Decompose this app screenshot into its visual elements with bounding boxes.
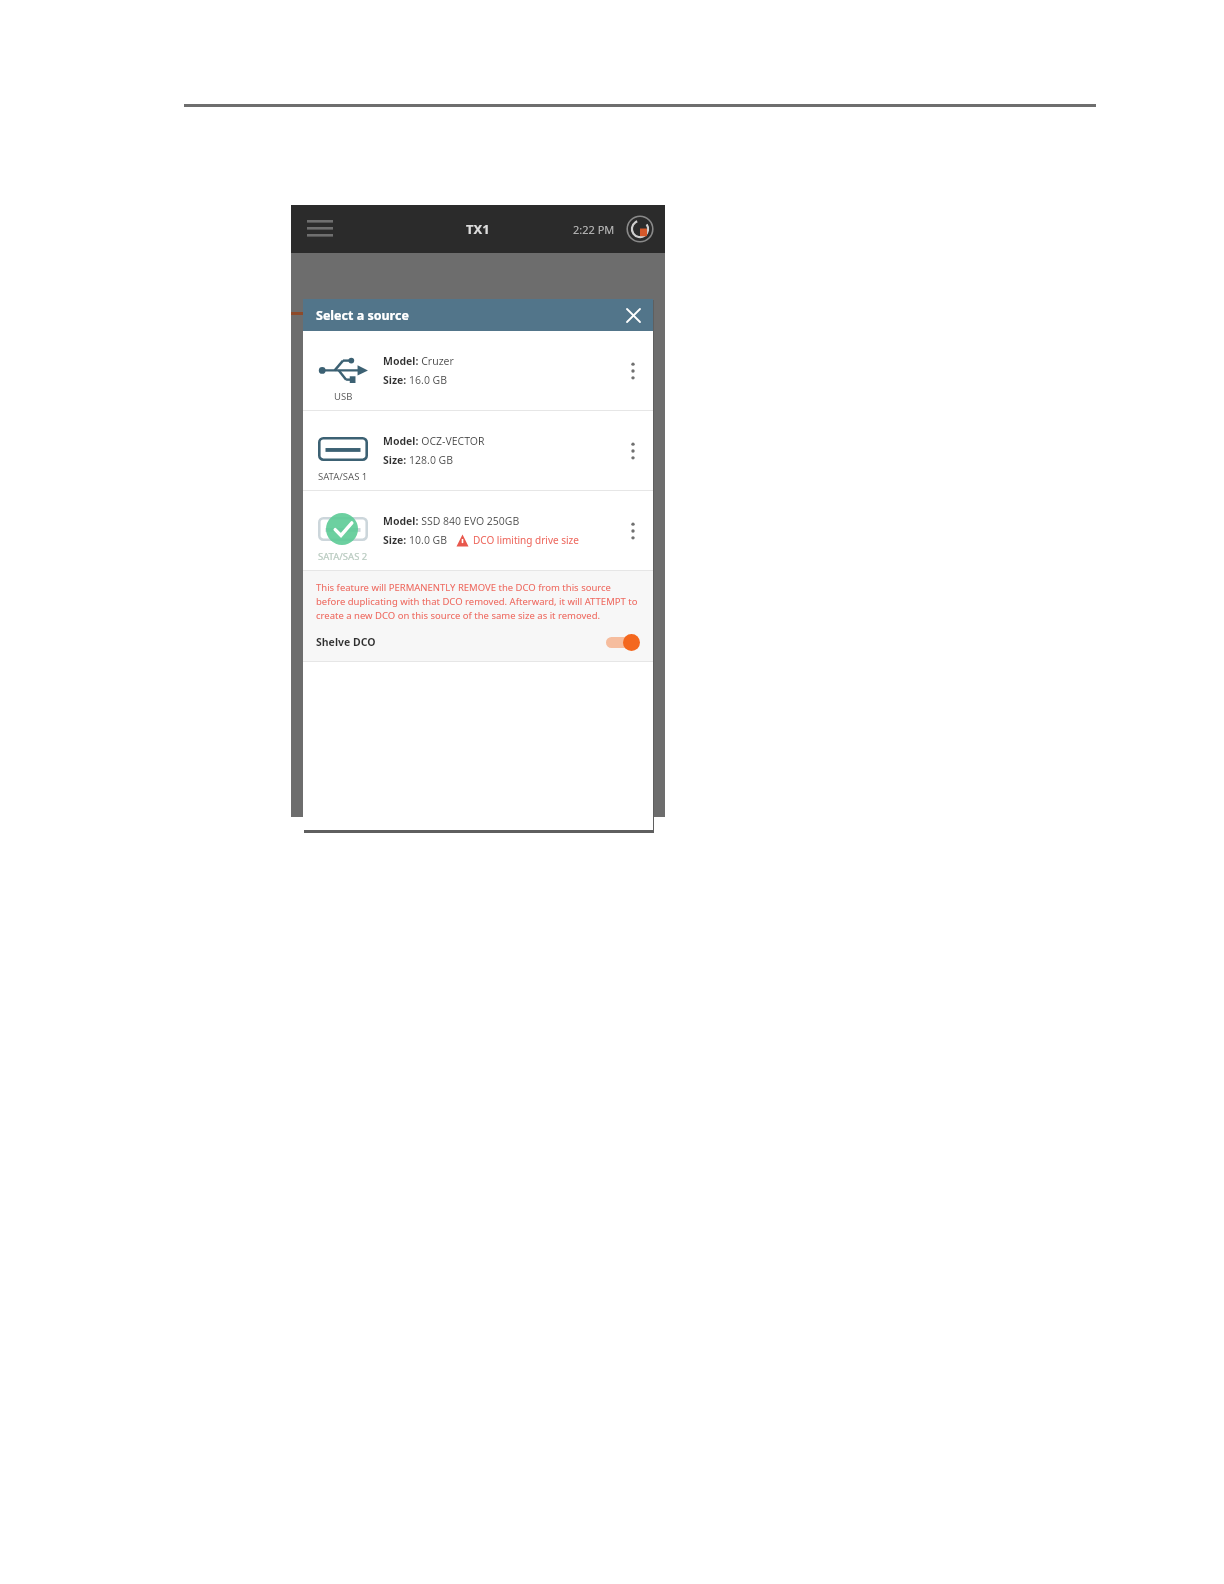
button[interactable]: Account <box>623 212 657 246</box>
staticText: Size: 128.0 GB <box>383 453 454 467</box>
staticText: Model: OCZ-VECTOR <box>383 434 485 448</box>
staticText: Size: 10.0 GB <box>383 533 448 547</box>
staticText: SATA/SAS 2 <box>318 550 368 563</box>
button[interactable]: More options <box>613 331 653 410</box>
staticText: TX1 <box>466 220 490 238</box>
button[interactable]: Menu <box>301 210 339 248</box>
staticText: USB <box>334 390 353 403</box>
staticText: Model: SSD 840 EVO 250GB <box>383 514 520 528</box>
staticText: SATA/SAS 1 <box>318 470 368 483</box>
staticText: DCO limiting drive size <box>473 533 579 547</box>
button[interactable]: Shelve DCO toggle <box>606 633 640 651</box>
staticText: This feature will PERMANENTLY REMOVE the… <box>316 581 640 622</box>
button[interactable]: USB <box>303 331 653 410</box>
button[interactable]: Shelve DCO <box>316 631 640 653</box>
staticText: Select a source <box>316 307 409 324</box>
button[interactable]: More options <box>613 411 653 490</box>
staticText: 2:22 PM <box>573 222 615 237</box>
staticText: Shelve DCO <box>316 635 376 649</box>
staticText: Size: 16.0 GB <box>383 373 448 387</box>
button[interactable]: SATA/SAS 2 <box>303 491 653 570</box>
button[interactable]: More options <box>613 491 653 570</box>
button[interactable]: Close <box>619 301 647 329</box>
button[interactable]: SATA/SAS 1 <box>303 411 653 490</box>
staticText: Model: Cruzer <box>383 354 454 368</box>
